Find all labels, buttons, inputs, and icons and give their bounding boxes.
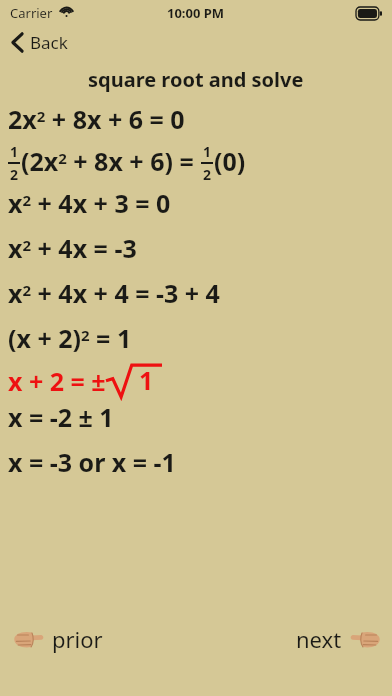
staticText: square root and solve xyxy=(88,66,304,93)
staticText: (0) xyxy=(214,144,246,178)
staticText: x + 2 = ± xyxy=(8,364,106,398)
staticText: Carrier xyxy=(10,4,53,22)
staticText: x2 + 4x + 4 = -3 + 4 xyxy=(8,276,220,310)
button[interactable]: Back xyxy=(0,26,80,60)
staticText: 1 xyxy=(139,363,154,397)
staticText: x2 + 4x + 3 = 0 xyxy=(8,186,171,220)
staticText: 10:00 PM xyxy=(167,4,225,22)
staticText: prior xyxy=(52,624,103,654)
staticText: next xyxy=(296,624,342,654)
staticText: x = -2 ± 1 xyxy=(8,400,114,434)
staticText: x = -3 or x = -1 xyxy=(8,445,176,479)
staticText: (2x2 + 8x + 6) = xyxy=(21,144,201,178)
staticText: 2 xyxy=(10,165,19,180)
button[interactable]: next xyxy=(286,618,392,660)
staticText: x2 + 4x = -3 xyxy=(8,231,137,265)
staticText: 1 xyxy=(203,142,212,161)
staticText: (x + 2)2 = 1 xyxy=(8,321,132,355)
staticText: 1 xyxy=(10,142,19,161)
staticText: Back xyxy=(30,31,68,54)
staticText: 2 xyxy=(203,165,212,180)
staticText: 2x2 + 8x + 6 = 0 xyxy=(8,102,185,136)
button[interactable]: prior xyxy=(0,618,113,660)
